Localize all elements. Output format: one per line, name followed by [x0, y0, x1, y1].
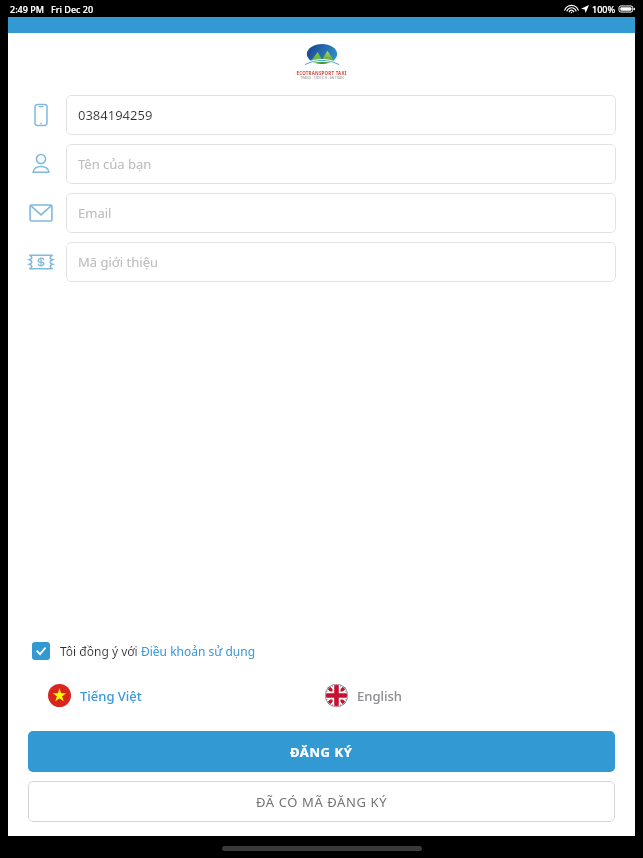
button[interactable]: Email: [26, 193, 616, 233]
staticText: ĐĂNG KÝ: [290, 743, 353, 761]
button[interactable]: English: [321, 680, 406, 711]
other: Your name: [28, 151, 54, 177]
other: Email: [28, 200, 54, 226]
staticText: Tiếng Việt: [80, 687, 142, 705]
staticText: Điều khoản sử dụng: [141, 643, 256, 659]
button[interactable]: Phone number: [26, 95, 616, 135]
staticText: ECOTRANSPORT TAXI: [296, 70, 347, 76]
button[interactable]: Tôi đồng ý với: [28, 636, 260, 666]
staticText: English: [357, 687, 402, 705]
button[interactable]: Vietnamese: [44, 680, 146, 711]
staticText: 100%: [592, 3, 616, 15]
staticText: 2:49 PM Fri Dec 20: [10, 3, 94, 15]
staticText: TRANG - TIỆN ÍCH - AN TOÀN: [300, 76, 344, 80]
staticText: Email: [78, 204, 112, 222]
other: Referral code: [28, 249, 54, 275]
button[interactable]: Your name: [26, 144, 616, 184]
staticText: ĐÃ CÓ MÃ ĐĂNG KÝ: [256, 793, 388, 811]
other: Phone number: [28, 102, 54, 128]
staticText: Tôi đồng ý với: [60, 643, 141, 659]
staticText: Tên của bạn: [78, 155, 152, 173]
staticText: 0384194259: [78, 106, 153, 124]
button[interactable]: Referral code: [26, 242, 616, 282]
staticText: Mã giới thiệu: [78, 253, 159, 271]
other: English: [325, 684, 348, 707]
other: Vietnamese: [48, 684, 71, 707]
button[interactable]: ĐÃ CÓ MÃ ĐĂNG KÝ: [28, 781, 615, 822]
button[interactable]: ĐĂNG KÝ: [28, 731, 615, 772]
